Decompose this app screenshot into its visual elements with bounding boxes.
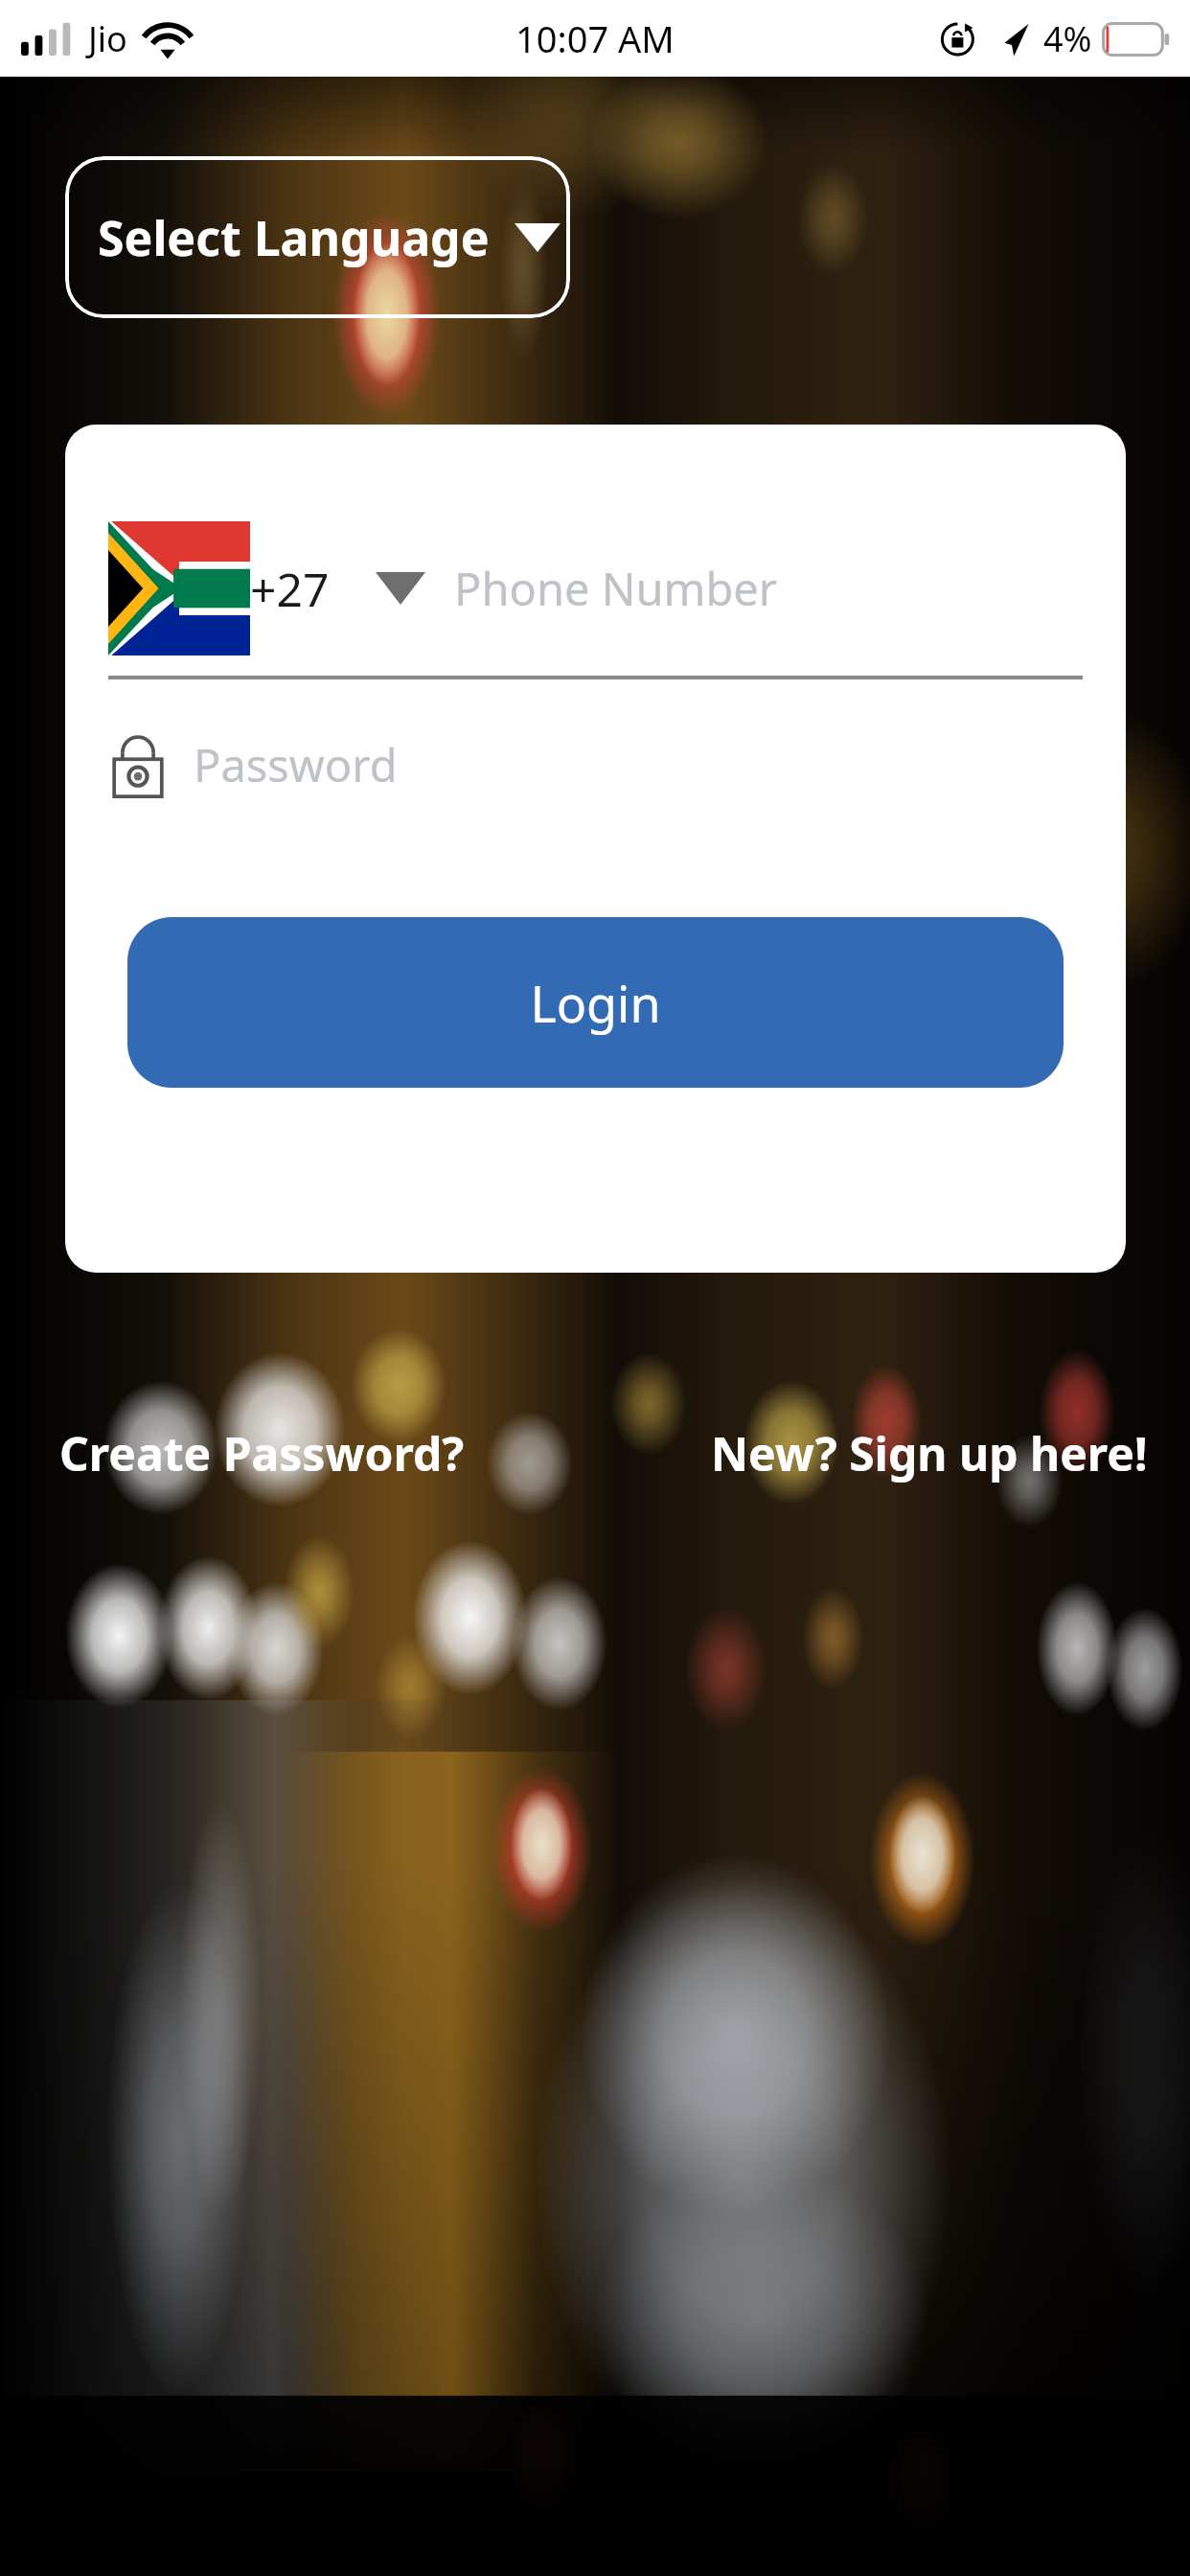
staticText: Phone Number	[454, 558, 778, 619]
button[interactable]: New? Sign up here!	[711, 1416, 1148, 1489]
staticText: 4%	[1043, 15, 1092, 62]
button[interactable]: +27	[108, 521, 1083, 655]
staticText: New? Sign up here!	[711, 1422, 1148, 1484]
staticText: Create Password?	[59, 1422, 465, 1484]
staticText: 10:07 AM	[515, 13, 675, 63]
staticText: Select Language	[98, 205, 490, 270]
button[interactable]: Select Language	[65, 156, 570, 318]
staticText: Jio	[88, 15, 127, 62]
staticText: Password	[194, 734, 398, 795]
button[interactable]: Login	[127, 917, 1064, 1088]
staticText: +27	[250, 558, 330, 620]
button[interactable]: Create Password?	[59, 1416, 465, 1489]
staticText: Login	[530, 969, 661, 1037]
button[interactable]: Password	[108, 712, 1083, 817]
